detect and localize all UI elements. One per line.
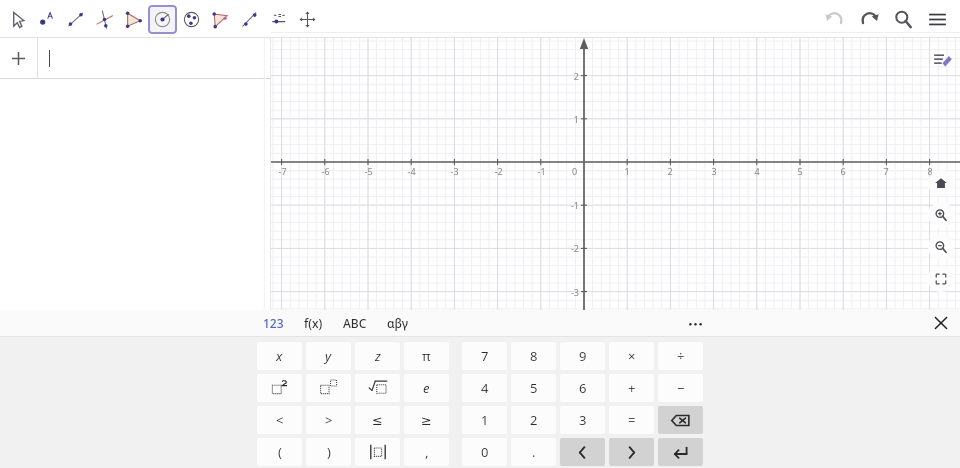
staticText: − xyxy=(677,379,685,397)
button[interactable]: π xyxy=(404,342,449,370)
button[interactable]: Move right xyxy=(609,438,654,466)
button[interactable]: Angle xyxy=(206,5,235,34)
button[interactable]: + xyxy=(609,374,654,402)
button[interactable]: ≥ xyxy=(404,406,449,434)
button[interactable]: Reflect about Line xyxy=(235,5,264,34)
staticText: > xyxy=(325,411,333,429)
staticText: 2 xyxy=(667,165,673,177)
button[interactable]: More options xyxy=(681,310,709,336)
staticText: 6 xyxy=(579,379,587,397)
button[interactable]: Move left xyxy=(560,438,605,466)
staticText: 4 xyxy=(481,379,489,397)
staticText: = xyxy=(628,411,636,429)
staticText: ( xyxy=(278,443,282,461)
staticText: ≤ xyxy=(372,413,383,428)
staticText: 9 xyxy=(579,347,587,365)
button[interactable]: Home xyxy=(928,170,954,196)
button[interactable]: 9 xyxy=(560,342,605,370)
button[interactable]: 2 xyxy=(511,406,556,434)
button[interactable]: Absolute value xyxy=(355,438,400,466)
button[interactable]: 123 xyxy=(258,313,289,333)
button[interactable]: f(x) xyxy=(299,313,328,333)
button[interactable]: Zoom out xyxy=(928,234,954,260)
staticText: 123 xyxy=(263,315,284,331)
button[interactable]: Square root xyxy=(355,374,400,402)
button[interactable]: Add input row xyxy=(0,38,270,78)
staticText: -2 xyxy=(570,242,579,254)
button[interactable]: 1 xyxy=(462,406,507,434)
staticText: 8 xyxy=(530,347,538,365)
staticText: -7 xyxy=(278,165,287,177)
button[interactable]: Fullscreen xyxy=(928,266,954,292)
button[interactable]: ) xyxy=(306,438,351,466)
button[interactable]: Close keyboard xyxy=(927,310,955,336)
button[interactable]: 6 xyxy=(560,374,605,402)
button[interactable]: Move Graphics View xyxy=(293,5,322,34)
button[interactable]: 0 xyxy=(462,438,507,466)
button[interactable]: Menu xyxy=(920,2,954,36)
staticText: x xyxy=(276,347,283,365)
button[interactable]: y xyxy=(306,342,351,370)
button[interactable]: Search xyxy=(886,2,920,36)
staticText: -5 xyxy=(364,165,373,177)
staticText: 7 xyxy=(481,347,489,365)
button[interactable]: Redo xyxy=(852,2,886,36)
staticText: 3 xyxy=(711,165,717,177)
button[interactable]: ( xyxy=(257,438,302,466)
button[interactable]: Move xyxy=(3,5,32,34)
staticText: -2 xyxy=(494,165,503,177)
staticText: -3 xyxy=(570,286,579,298)
staticText: ) xyxy=(327,443,331,461)
button[interactable]: > xyxy=(306,406,351,434)
button[interactable]: 4 xyxy=(462,374,507,402)
button[interactable]: Backspace xyxy=(658,406,703,434)
button[interactable]: Square xyxy=(257,374,302,402)
button[interactable]: ≤ xyxy=(355,406,400,434)
button[interactable]: = xyxy=(609,406,654,434)
button[interactable]: , xyxy=(404,438,449,466)
button[interactable]: 5 xyxy=(511,374,556,402)
button[interactable]: ÷ xyxy=(658,342,703,370)
button[interactable]: . xyxy=(511,438,556,466)
staticText: 8 xyxy=(927,165,933,177)
staticText: 0 xyxy=(572,165,578,177)
staticText: y xyxy=(325,347,332,365)
staticText: -1 xyxy=(570,199,579,211)
staticText: 1 xyxy=(481,411,489,429)
staticText: 6 xyxy=(840,165,846,177)
button[interactable]: − xyxy=(658,374,703,402)
button[interactable]: Circle with Center xyxy=(148,5,177,34)
staticText: + xyxy=(628,379,636,397)
button[interactable]: Perpendicular Line xyxy=(90,5,119,34)
button[interactable]: Style bar xyxy=(927,45,957,75)
button[interactable]: αβγ xyxy=(382,313,414,333)
button[interactable]: z xyxy=(355,342,400,370)
staticText: , xyxy=(425,443,429,461)
staticText: αβγ xyxy=(387,315,409,331)
button[interactable]: 3 xyxy=(560,406,605,434)
button[interactable]: × xyxy=(609,342,654,370)
staticText: e xyxy=(423,379,430,397)
button[interactable]: x xyxy=(257,342,302,370)
staticText: π xyxy=(422,347,431,365)
staticText: -3 xyxy=(450,165,459,177)
button[interactable]: Enter xyxy=(658,438,703,466)
button[interactable]: Slider xyxy=(264,5,293,34)
button[interactable]: Zoom in xyxy=(928,202,954,228)
button[interactable]: Point xyxy=(32,5,61,34)
button[interactable]: Undo xyxy=(818,2,852,36)
button[interactable]: Power xyxy=(306,374,351,402)
button[interactable]: 7 xyxy=(462,342,507,370)
staticText: -1 xyxy=(537,165,546,177)
button[interactable]: Line xyxy=(61,5,90,34)
staticText: z xyxy=(375,347,381,365)
button[interactable]: ABC xyxy=(338,313,372,333)
button[interactable]: e xyxy=(404,374,449,402)
staticText: 5 xyxy=(797,165,803,177)
button[interactable]: Polygon xyxy=(119,5,148,34)
button[interactable]: Ellipse xyxy=(177,5,206,34)
staticText: 5 xyxy=(530,379,538,397)
staticText: 3 xyxy=(579,411,587,429)
button[interactable]: 8 xyxy=(511,342,556,370)
button[interactable]: < xyxy=(257,406,302,434)
